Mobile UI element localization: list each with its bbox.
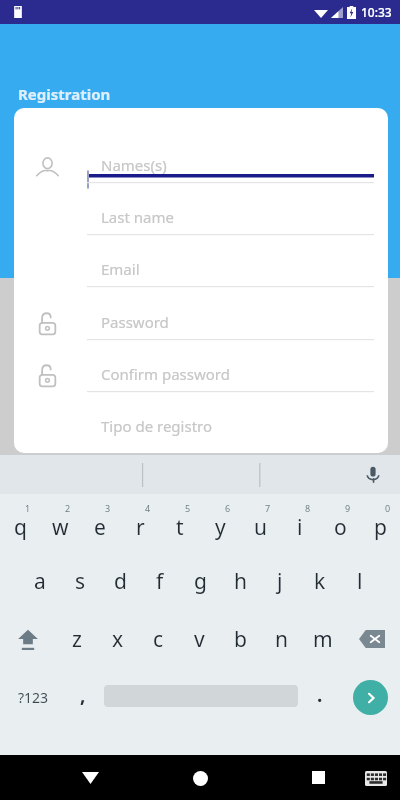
- staticText: w: [52, 513, 69, 542]
- button[interactable]: 9: [320, 494, 360, 552]
- button[interactable]: 1: [0, 494, 40, 552]
- staticText: 2: [65, 502, 71, 514]
- staticText: Tipo de registro: [101, 416, 213, 436]
- button[interactable]: Next: [353, 680, 388, 715]
- button[interactable]: ?123: [4, 668, 62, 726]
- button[interactable]: ,: [62, 668, 104, 726]
- staticText: e: [94, 513, 106, 542]
- button[interactable]: Voice input: [360, 462, 386, 488]
- staticText: Registration: [18, 84, 111, 104]
- button[interactable]: c: [138, 610, 179, 668]
- button[interactable]: g: [180, 552, 220, 610]
- staticText: z: [72, 625, 82, 654]
- button[interactable]: 4: [120, 494, 160, 552]
- staticText: f: [156, 567, 164, 596]
- staticText: 1: [25, 502, 31, 514]
- staticText: h: [234, 567, 247, 596]
- staticText: 10:33: [361, 4, 392, 20]
- staticText: n: [275, 625, 288, 654]
- staticText: g: [194, 567, 207, 596]
- staticText: d: [114, 567, 127, 596]
- staticText: 7: [265, 502, 271, 514]
- staticText: 8: [305, 502, 311, 514]
- button[interactable]: Keyboard: [360, 762, 392, 794]
- button[interactable]: x: [97, 610, 138, 668]
- button[interactable]: 7: [240, 494, 280, 552]
- staticText: j: [277, 567, 283, 596]
- staticText: Email: [101, 259, 140, 279]
- staticText: 0: [385, 502, 391, 514]
- staticText: 4: [145, 502, 151, 514]
- button[interactable]: h: [220, 552, 260, 610]
- button[interactable]: k: [300, 552, 340, 610]
- staticText: i: [297, 513, 303, 542]
- button[interactable]: Recents: [298, 755, 338, 800]
- button[interactable]: Password: [14, 301, 388, 353]
- staticText: c: [153, 625, 164, 654]
- staticText: .: [317, 682, 323, 708]
- staticText: x: [112, 625, 124, 654]
- button[interactable]: Tipo de registro: [14, 405, 388, 453]
- button[interactable]: m: [302, 610, 343, 668]
- button[interactable]: d: [100, 552, 140, 610]
- staticText: y: [215, 513, 226, 542]
- button[interactable]: s: [60, 552, 100, 610]
- staticText: Confirm password: [101, 364, 230, 384]
- staticText: ,: [80, 682, 86, 708]
- button[interactable]: 5: [160, 494, 200, 552]
- staticText: l: [357, 567, 363, 596]
- staticText: p: [374, 513, 387, 542]
- staticText: q: [14, 513, 27, 542]
- staticText: b: [234, 625, 247, 654]
- button[interactable]: a: [20, 552, 60, 610]
- button[interactable]: Last name: [14, 196, 388, 248]
- button[interactable]: Back: [70, 755, 110, 800]
- staticText: t: [176, 513, 184, 542]
- staticText: v: [194, 625, 205, 654]
- staticText: Password: [101, 312, 169, 332]
- button[interactable]: 3: [80, 494, 120, 552]
- staticText: Names(s): [101, 155, 167, 175]
- button[interactable]: l: [340, 552, 380, 610]
- button[interactable]: f: [140, 552, 180, 610]
- staticText: ?123: [18, 688, 49, 707]
- button[interactable]: b: [220, 610, 261, 668]
- button[interactable]: 6: [200, 494, 240, 552]
- button[interactable]: v: [179, 610, 220, 668]
- staticText: m: [313, 625, 333, 654]
- staticText: s: [75, 567, 86, 596]
- staticText: 5: [185, 502, 191, 514]
- staticText: 3: [105, 502, 111, 514]
- button[interactable]: 0: [360, 494, 400, 552]
- button[interactable]: z: [56, 610, 97, 668]
- staticText: a: [34, 567, 46, 596]
- button[interactable]: 2: [40, 494, 80, 552]
- button[interactable]: j: [260, 552, 300, 610]
- button[interactable]: Home: [180, 758, 220, 798]
- staticText: Last name: [101, 207, 174, 227]
- staticText: 6: [225, 502, 231, 514]
- button[interactable]: .: [300, 668, 340, 726]
- staticText: u: [254, 513, 267, 542]
- button[interactable]: Names(s): [14, 144, 388, 196]
- button[interactable]: Confirm password: [14, 353, 388, 405]
- button[interactable]: n: [261, 610, 302, 668]
- button[interactable]: 8: [280, 494, 320, 552]
- staticText: r: [136, 513, 145, 542]
- button[interactable]: Shift: [0, 610, 56, 668]
- button[interactable]: Backspace: [343, 610, 400, 668]
- staticText: o: [334, 513, 347, 542]
- staticText: 9: [345, 502, 351, 514]
- staticText: k: [314, 567, 326, 596]
- button[interactable]: Email: [14, 248, 388, 300]
